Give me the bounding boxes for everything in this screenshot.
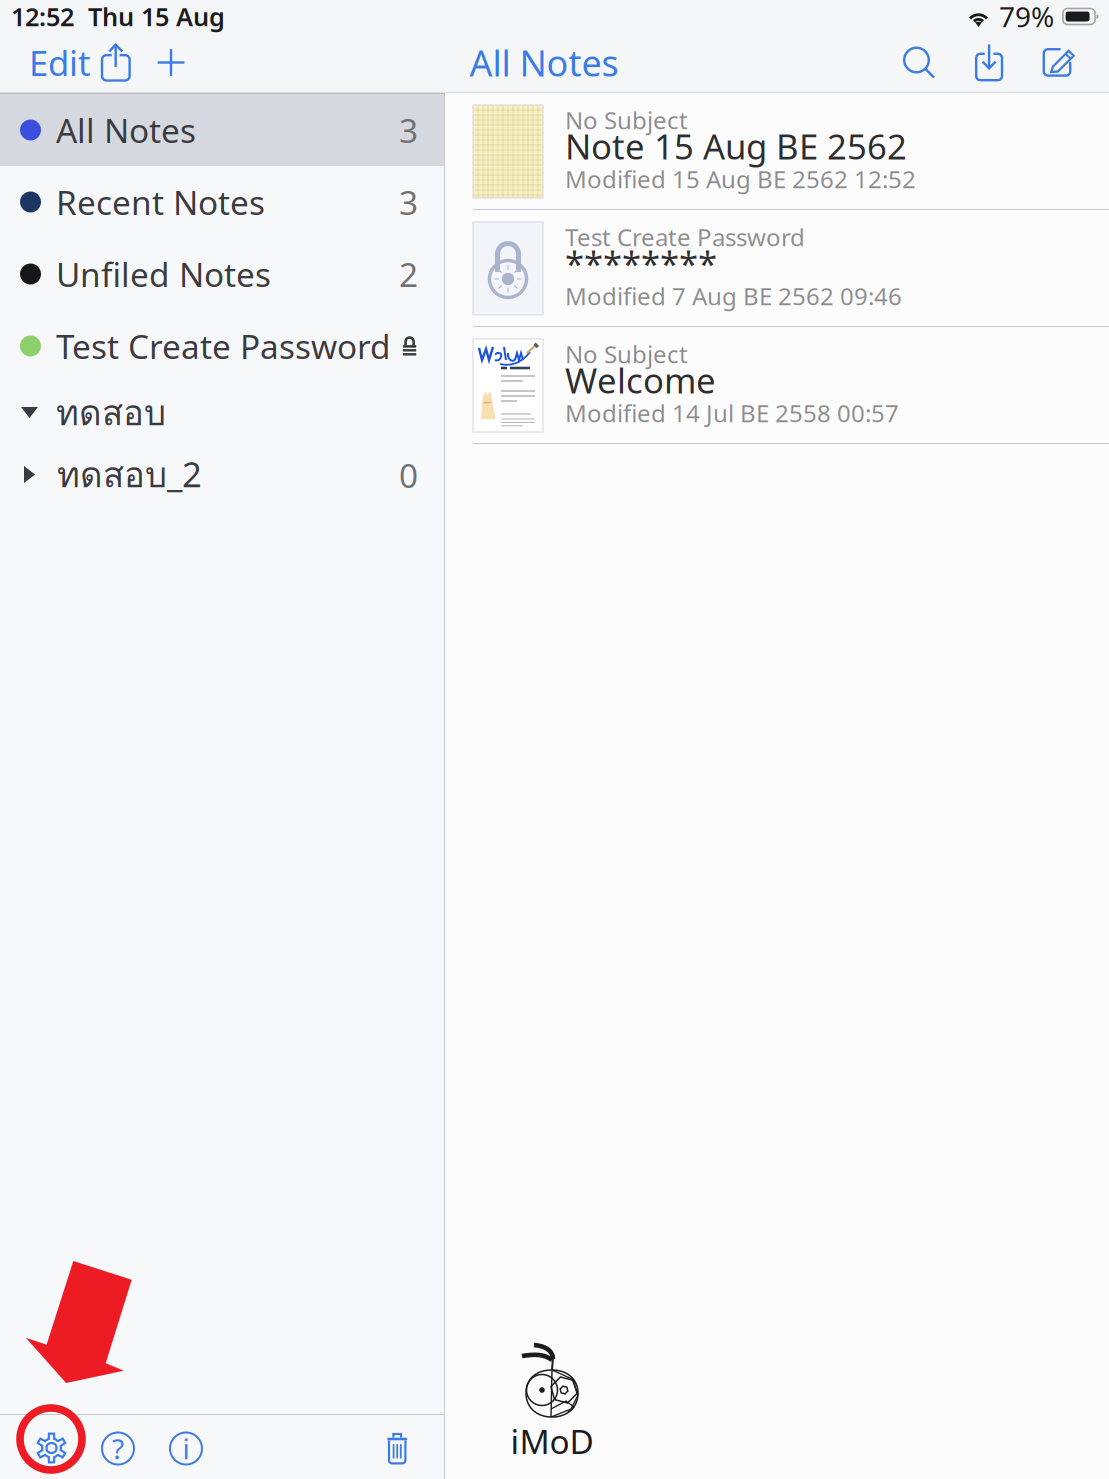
staticText: ******** xyxy=(565,240,717,286)
staticText: Edit xyxy=(29,39,91,85)
staticText: iMoD xyxy=(510,1419,593,1463)
staticText: 79% xyxy=(999,0,1054,35)
button[interactable]: ทดสอบ_2 xyxy=(0,444,444,506)
button[interactable]: Help xyxy=(68,1428,135,1465)
staticText: Thu 15 Aug xyxy=(88,0,225,33)
button[interactable]: Unfiled Notes xyxy=(0,238,444,310)
button[interactable]: Settings xyxy=(0,1430,68,1464)
button[interactable]: Test Create Password xyxy=(0,310,444,382)
button[interactable]: New note xyxy=(134,48,185,76)
staticText: Unfiled Notes xyxy=(56,252,271,296)
staticText: 2 xyxy=(399,252,418,296)
staticText: ทดสอบ_2 xyxy=(57,448,202,502)
staticText: 3 xyxy=(399,108,418,152)
button[interactable]: Recent Notes xyxy=(0,166,444,238)
staticText: Recent Notes xyxy=(56,180,265,224)
staticText: Test Create Password xyxy=(565,221,805,253)
button[interactable]: No Subject xyxy=(445,93,1109,210)
staticText: All Notes xyxy=(469,39,618,86)
button[interactable]: Info xyxy=(135,1428,203,1465)
staticText: 12:52 xyxy=(11,0,74,33)
staticText: ? xyxy=(112,1430,124,1467)
staticText: i xyxy=(182,1430,189,1467)
staticText: Welcome xyxy=(565,357,716,403)
staticText: Note 15 Aug BE 2562 xyxy=(565,123,907,169)
staticText: Modified 7 Aug BE 2562 09:46 xyxy=(565,280,902,312)
button[interactable]: Compose xyxy=(1003,48,1109,77)
staticText: 0 xyxy=(399,453,418,497)
staticText: Modified 14 Jul BE 2558 00:57 xyxy=(565,397,899,429)
button[interactable]: Edit xyxy=(0,39,95,85)
button[interactable]: Search xyxy=(903,46,935,78)
staticText: 3 xyxy=(399,180,418,224)
staticText: No Subject xyxy=(565,338,688,370)
button[interactable]: ทดสอบ xyxy=(0,382,444,444)
button[interactable]: Share xyxy=(95,43,134,81)
button[interactable]: No Subject xyxy=(445,327,1109,444)
button[interactable]: Delete xyxy=(386,1429,444,1465)
button[interactable]: Test Create Password xyxy=(445,210,1109,327)
staticText: Modified 15 Aug BE 2562 12:52 xyxy=(565,163,916,195)
button[interactable]: All Notes xyxy=(0,94,444,166)
staticText: All Notes xyxy=(56,108,196,152)
staticText: Test Create Password xyxy=(56,324,391,368)
staticText: No Subject xyxy=(565,104,688,136)
button[interactable]: Import xyxy=(935,44,1003,81)
staticText: ทดสอบ xyxy=(56,386,166,440)
